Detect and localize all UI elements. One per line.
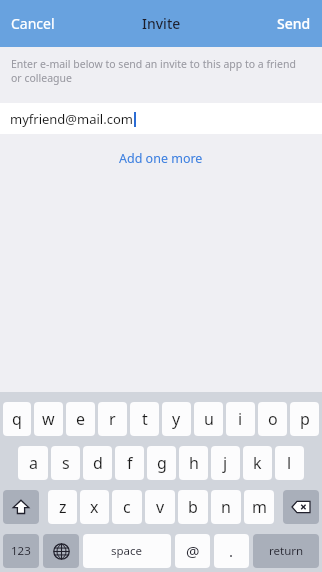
button[interactable]: space bbox=[83, 534, 171, 568]
staticText: q bbox=[12, 408, 22, 430]
button[interactable]: Shift bbox=[3, 490, 39, 524]
button[interactable]: Change keyboard language bbox=[43, 534, 79, 568]
button[interactable]: q bbox=[3, 402, 31, 436]
staticText: l bbox=[287, 452, 292, 474]
button[interactable]: g bbox=[147, 446, 176, 480]
staticText: n bbox=[221, 496, 231, 518]
button[interactable]: v bbox=[145, 490, 175, 524]
staticText: a bbox=[29, 452, 38, 474]
button[interactable]: d bbox=[83, 446, 112, 480]
button[interactable]: o bbox=[258, 402, 287, 436]
button[interactable]: Add one more bbox=[109, 144, 213, 173]
button[interactable]: t bbox=[130, 402, 159, 436]
button[interactable]: @ bbox=[175, 534, 210, 568]
button[interactable]: . bbox=[214, 534, 249, 568]
button[interactable]: u bbox=[194, 402, 223, 436]
button[interactable]: n bbox=[211, 490, 241, 524]
staticText: t bbox=[142, 408, 148, 430]
staticText: @ bbox=[186, 541, 200, 561]
button[interactable]: i bbox=[226, 402, 255, 436]
button[interactable]: j bbox=[211, 446, 240, 480]
button[interactable]: m bbox=[244, 490, 274, 524]
staticText: r bbox=[109, 408, 116, 430]
staticText: j bbox=[223, 452, 228, 474]
staticText: b bbox=[188, 496, 198, 518]
button[interactable]: f bbox=[115, 446, 144, 480]
staticText: y bbox=[172, 408, 181, 430]
staticText: i bbox=[238, 408, 243, 430]
staticText: o bbox=[268, 408, 278, 430]
staticText: u bbox=[204, 408, 214, 430]
staticText: Send bbox=[277, 14, 311, 33]
staticText: 123 bbox=[11, 543, 31, 559]
staticText: myfriend@mail.com bbox=[10, 110, 133, 128]
button[interactable]: h bbox=[179, 446, 208, 480]
staticText: w bbox=[42, 408, 55, 430]
button[interactable]: Cancel bbox=[8, 9, 58, 38]
staticText: p bbox=[300, 408, 310, 430]
staticText: Cancel bbox=[11, 14, 55, 33]
staticText: x bbox=[90, 496, 99, 518]
button[interactable]: l bbox=[275, 446, 304, 480]
staticText: f bbox=[127, 452, 133, 474]
staticText: return bbox=[269, 543, 304, 559]
staticText: Enter e-mail below to send an invite to … bbox=[11, 57, 302, 85]
button[interactable]: p bbox=[290, 402, 319, 436]
staticText: z bbox=[59, 496, 67, 518]
button[interactable]: 123 bbox=[3, 534, 39, 568]
staticText: s bbox=[62, 452, 70, 474]
staticText: m bbox=[252, 496, 267, 518]
button[interactable]: k bbox=[243, 446, 272, 480]
staticText: c bbox=[123, 496, 131, 518]
staticText: g bbox=[157, 452, 167, 474]
staticText: h bbox=[189, 452, 199, 474]
button[interactable]: myfriend@mail.com bbox=[0, 103, 322, 134]
button[interactable]: e bbox=[66, 402, 95, 436]
staticText: v bbox=[156, 496, 165, 518]
button[interactable]: Backspace bbox=[283, 490, 319, 524]
button[interactable]: b bbox=[178, 490, 208, 524]
button[interactable]: y bbox=[162, 402, 191, 436]
staticText: . bbox=[229, 541, 234, 561]
staticText: Add one more bbox=[119, 150, 203, 167]
button[interactable]: a bbox=[18, 446, 48, 480]
button[interactable]: return bbox=[253, 534, 319, 568]
staticText: e bbox=[76, 408, 86, 430]
button[interactable]: c bbox=[112, 490, 142, 524]
button[interactable]: x bbox=[80, 490, 109, 524]
button[interactable]: z bbox=[48, 490, 77, 524]
staticText: d bbox=[93, 452, 103, 474]
staticText: Invite bbox=[142, 14, 181, 33]
button[interactable]: w bbox=[34, 402, 63, 436]
staticText: k bbox=[253, 452, 262, 474]
button[interactable]: r bbox=[98, 402, 127, 436]
button[interactable]: Send bbox=[274, 9, 314, 38]
staticText: space bbox=[111, 543, 143, 559]
button[interactable]: s bbox=[51, 446, 80, 480]
